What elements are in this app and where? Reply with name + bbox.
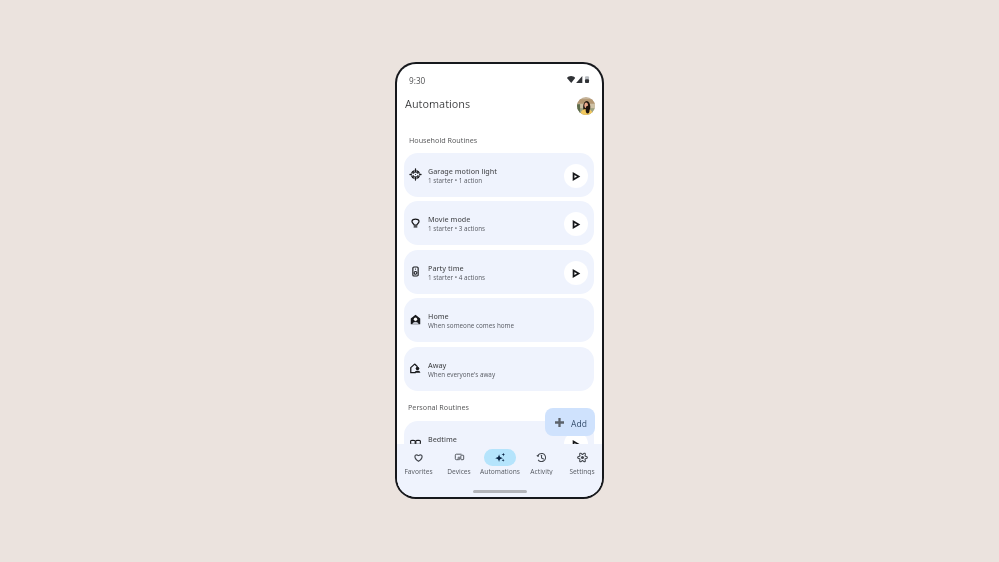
- button[interactable]: Home: [404, 298, 594, 342]
- staticText: Personal Routines: [408, 402, 470, 412]
- staticText: Automations: [405, 96, 471, 111]
- staticText: Party time: [428, 263, 464, 273]
- staticText: Settings: [569, 467, 595, 475]
- staticText: Away: [428, 360, 447, 370]
- staticText: 1 starter • 4 actions: [428, 273, 486, 282]
- button[interactable]: Favorites: [397, 449, 439, 475]
- button[interactable]: Bedtime: [404, 421, 594, 465]
- button[interactable]: Account: [577, 97, 595, 115]
- button[interactable]: Add: [545, 408, 595, 436]
- button[interactable]: Activity: [520, 449, 562, 475]
- button[interactable]: Party time: [404, 250, 594, 294]
- button[interactable]: Movie mode: [404, 201, 594, 245]
- staticText: Garage motion light: [428, 166, 498, 176]
- staticText: Add: [571, 418, 587, 430]
- button[interactable]: Play Movie mode: [564, 212, 588, 236]
- staticText: Movie mode: [428, 214, 471, 224]
- button[interactable]: Play Garage motion light: [564, 164, 588, 188]
- button[interactable]: Devices: [438, 449, 480, 475]
- staticText: Favorites: [404, 467, 433, 475]
- button[interactable]: Automations: [479, 449, 521, 475]
- staticText: When everyone's away: [428, 370, 496, 379]
- staticText: Household Routines: [409, 135, 478, 145]
- button[interactable]: Settings: [561, 449, 602, 475]
- staticText: 9:30: [409, 75, 426, 86]
- staticText: 1 starter • 3 actions: [428, 224, 486, 233]
- button[interactable]: Play Party time: [564, 261, 588, 285]
- staticText: When someone comes home: [428, 321, 515, 330]
- staticText: Automations: [480, 467, 520, 475]
- staticText: Bedtime: [428, 434, 457, 444]
- staticText: Home: [428, 311, 449, 321]
- staticText: Devices: [447, 467, 471, 475]
- button[interactable]: Away: [404, 347, 594, 391]
- button[interactable]: Garage motion light: [404, 153, 594, 197]
- staticText: 1 starter • 1 action: [428, 176, 483, 185]
- button[interactable]: Play Bedtime: [564, 432, 588, 456]
- staticText: Activity: [530, 467, 553, 475]
